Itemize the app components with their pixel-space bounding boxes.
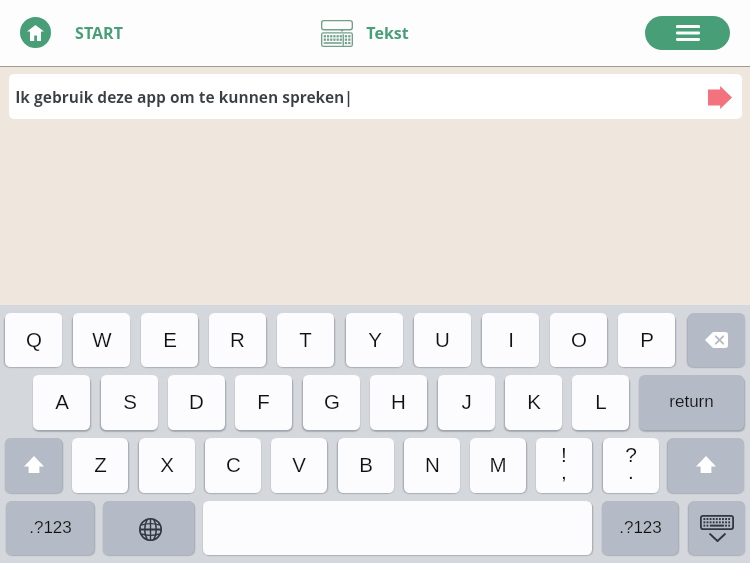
button[interactable]: Backspace	[688, 313, 745, 367]
staticText: A	[55, 390, 69, 413]
staticText: .?123	[619, 518, 662, 537]
staticText: L	[595, 390, 607, 413]
staticText: D	[189, 390, 204, 413]
button[interactable]: V	[271, 438, 327, 493]
button[interactable]: R	[209, 313, 266, 367]
staticText: .	[628, 460, 634, 483]
button[interactable]: Z	[72, 438, 128, 493]
staticText: I	[508, 328, 514, 351]
staticText: F	[257, 390, 270, 413]
button[interactable]: G	[303, 375, 360, 430]
button[interactable]: X	[139, 438, 195, 493]
staticText: N	[425, 453, 440, 476]
button[interactable]: W	[73, 313, 130, 367]
staticText: Tekst	[366, 22, 409, 44]
staticText: P	[640, 328, 654, 351]
staticText: W	[92, 328, 112, 351]
button[interactable]: E	[141, 313, 198, 367]
staticText: K	[527, 390, 541, 413]
staticText: V	[292, 453, 306, 476]
button[interactable]: I	[482, 313, 539, 367]
staticText: M	[489, 453, 507, 476]
button[interactable]: Ik gebruik deze app om te kunnen spreken…	[9, 74, 742, 119]
button[interactable]: A	[33, 375, 90, 430]
button[interactable]: .?123	[602, 501, 678, 555]
staticText: Ik gebruik deze app om te kunnen spreken…	[15, 86, 353, 107]
button[interactable]: Switch keyboard	[103, 501, 194, 555]
staticText: B	[359, 453, 373, 476]
button[interactable]: M	[470, 438, 526, 493]
button[interactable]: P	[618, 313, 675, 367]
button[interactable]: T	[277, 313, 334, 367]
button[interactable]: .?123	[6, 501, 94, 555]
button[interactable]: J	[438, 375, 495, 430]
button[interactable]: Tekst	[321, 14, 409, 52]
staticText: !	[561, 443, 567, 466]
button[interactable]: N	[404, 438, 460, 493]
button[interactable]: O	[550, 313, 607, 367]
staticText: H	[391, 390, 406, 413]
button[interactable]: Speak	[708, 86, 732, 109]
button[interactable]: Menu	[645, 16, 730, 50]
button[interactable]: K	[505, 375, 562, 430]
staticText: ,	[561, 460, 567, 483]
button[interactable]: ?	[603, 438, 659, 493]
button[interactable]: Hide keyboard	[689, 501, 745, 555]
button[interactable]: L	[572, 375, 629, 430]
button[interactable]: Shift	[5, 438, 62, 493]
button[interactable]: C	[205, 438, 261, 493]
staticText: Z	[94, 453, 107, 476]
staticText: X	[160, 453, 174, 476]
button[interactable]: D	[168, 375, 225, 430]
staticText: T	[299, 328, 312, 351]
staticText: R	[230, 328, 245, 351]
staticText: START	[75, 22, 123, 44]
staticText: C	[226, 453, 241, 476]
staticText: return	[669, 392, 714, 411]
button[interactable]: S	[101, 375, 158, 430]
staticText: Y	[368, 328, 382, 351]
staticText: ?	[625, 443, 637, 466]
button[interactable]: !	[536, 438, 592, 493]
staticText: U	[435, 328, 450, 351]
button[interactable]: B	[338, 438, 394, 493]
staticText: J	[461, 390, 472, 413]
staticText: S	[123, 390, 137, 413]
staticText: O	[571, 328, 587, 351]
button[interactable]: START	[75, 22, 123, 44]
button[interactable]: return	[639, 375, 744, 430]
button[interactable]: U	[414, 313, 471, 367]
button[interactable]: Home	[20, 17, 51, 48]
staticText: G	[324, 390, 340, 413]
staticText: .?123	[29, 518, 72, 537]
staticText: E	[163, 328, 177, 351]
button[interactable]: Q	[5, 313, 62, 367]
button[interactable]: F	[235, 375, 292, 430]
staticText: Q	[26, 328, 42, 351]
button[interactable]: Shift	[668, 438, 744, 493]
button[interactable]: Y	[346, 313, 403, 367]
button[interactable]: H	[370, 375, 427, 430]
